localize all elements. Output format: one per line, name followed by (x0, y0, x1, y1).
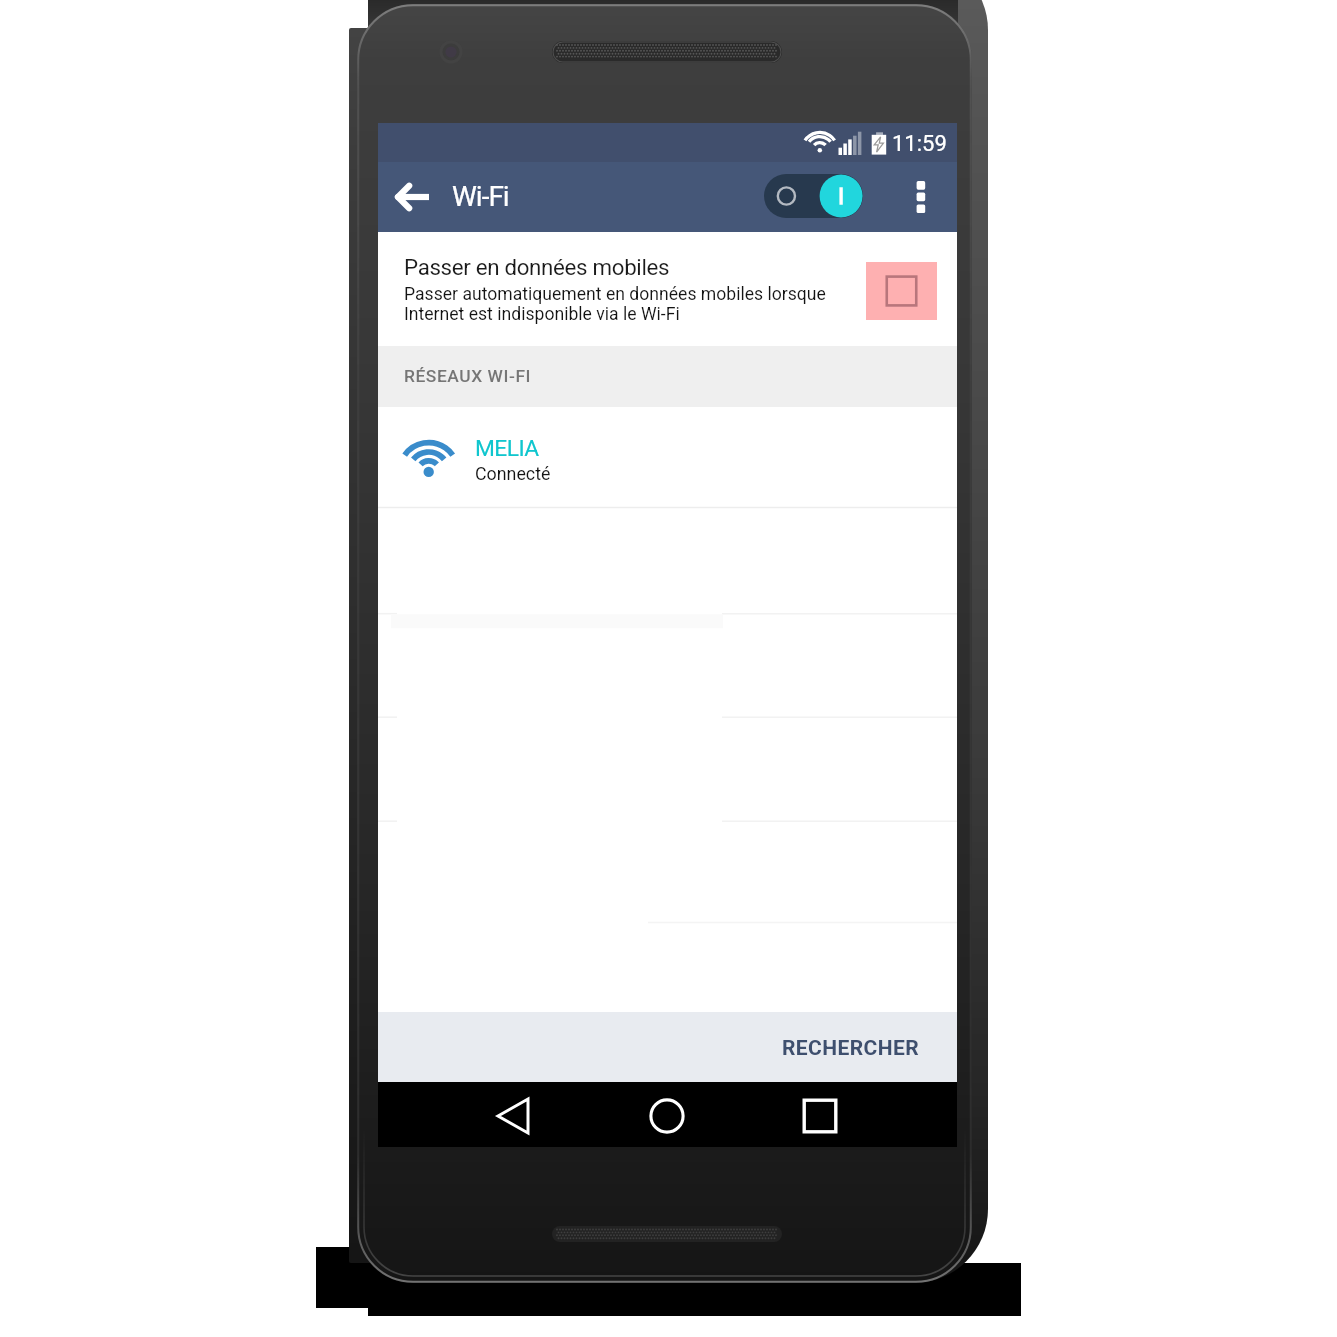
staticText: MELIA (475, 435, 539, 462)
button[interactable]: Toggle mobile data fallback (866, 262, 937, 320)
staticText: Passer automatiquement en données mobile… (404, 284, 826, 324)
button[interactable]: MELIA (378, 407, 957, 507)
button[interactable]: Passer en données mobiles (378, 232, 957, 346)
button[interactable]: Back (484, 1086, 544, 1146)
staticText: 11:59 (892, 131, 947, 157)
staticText: Connecté (475, 463, 551, 484)
staticText: RÉSEAUX WI-FI (404, 366, 531, 386)
button[interactable]: Recent apps (790, 1086, 850, 1146)
button[interactable]: Wi-Fi on (764, 174, 863, 218)
staticText: RECHERCHER (782, 1036, 920, 1061)
button[interactable]: RECHERCHER (770, 1026, 932, 1070)
button[interactable]: Navigate up (378, 165, 448, 229)
staticText: Wi-Fi (452, 180, 509, 213)
button[interactable]: More options (894, 170, 948, 224)
button[interactable]: Home (637, 1086, 697, 1146)
staticText: Passer en données mobiles (404, 254, 670, 280)
